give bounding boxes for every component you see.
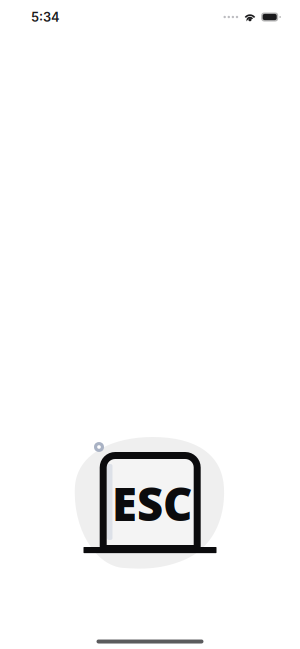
staticText: 5:34 <box>31 9 60 25</box>
staticText: ESC <box>112 473 192 534</box>
